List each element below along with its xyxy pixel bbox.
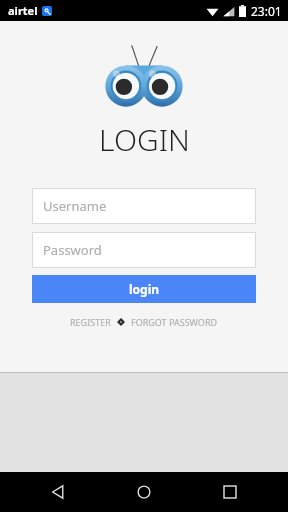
staticText: REGISTER (70, 316, 111, 328)
staticText: airtel (8, 3, 38, 18)
button[interactable]: Home (116, 472, 172, 512)
staticText: FORGOT PASSWORD (131, 316, 218, 328)
button[interactable]: Back (30, 472, 86, 512)
button[interactable]: Recent apps (202, 472, 258, 512)
staticText: Password (43, 241, 102, 259)
button[interactable]: FORGOT PASSWORD (129, 314, 220, 330)
button[interactable]: Username (32, 188, 256, 224)
staticText: 23:01 (251, 3, 282, 19)
staticText: login (129, 281, 160, 297)
button[interactable]: login (32, 275, 256, 303)
staticText: LOGIN (99, 119, 190, 160)
button[interactable]: REGISTER (68, 314, 113, 330)
staticText: Username (43, 197, 107, 215)
other: App logo (102, 43, 186, 113)
button[interactable]: Password (32, 232, 256, 268)
